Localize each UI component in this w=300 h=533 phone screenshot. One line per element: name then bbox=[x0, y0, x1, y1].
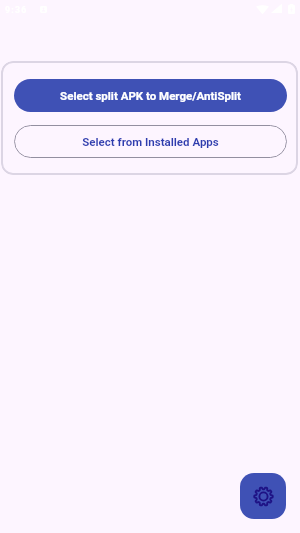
button[interactable]: Select split APK to Merge/AntiSplit bbox=[14, 79, 287, 112]
staticText: Select from Installed Apps bbox=[82, 135, 219, 148]
button[interactable]: Settings bbox=[240, 473, 286, 519]
button[interactable]: Select from Installed Apps bbox=[14, 125, 287, 158]
staticText: 9:36 bbox=[5, 5, 28, 15]
staticText: Select split APK to Merge/AntiSplit bbox=[60, 89, 241, 102]
